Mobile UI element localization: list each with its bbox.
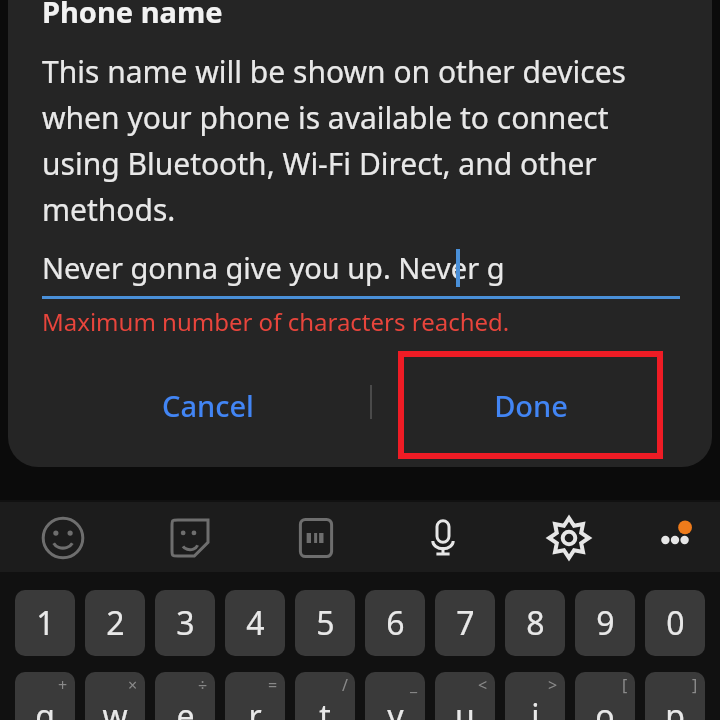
button[interactable]: Keyboard settings <box>539 508 599 568</box>
button[interactable]: 6 <box>365 590 425 656</box>
staticText: 4 <box>246 601 265 645</box>
button[interactable]: 7 <box>435 590 495 656</box>
staticText: × <box>128 674 138 696</box>
staticText: _ <box>410 674 418 696</box>
button[interactable]: More options <box>645 508 705 568</box>
button[interactable]: ] <box>645 672 705 720</box>
staticText: t <box>319 694 331 720</box>
staticText: < <box>478 674 488 696</box>
button[interactable]: < <box>435 672 495 720</box>
button[interactable]: [ <box>575 672 635 720</box>
button[interactable]: 1 <box>15 590 75 656</box>
button[interactable]: 4 <box>225 590 285 656</box>
staticText: Maximum number of characters reached. <box>42 305 510 338</box>
button[interactable]: 8 <box>505 590 565 656</box>
staticText: 1 <box>36 601 55 645</box>
button[interactable]: Done <box>404 357 657 453</box>
button[interactable]: + <box>15 672 75 720</box>
staticText: r <box>248 694 262 720</box>
button[interactable]: Stickers <box>160 508 220 568</box>
button[interactable]: = <box>225 672 285 720</box>
staticText: 0 <box>666 601 685 645</box>
staticText: > <box>548 674 558 696</box>
button[interactable]: / <box>295 672 355 720</box>
button[interactable]: 0 <box>645 590 705 656</box>
button[interactable]: × <box>85 672 145 720</box>
staticText: 3 <box>176 601 195 645</box>
staticText: ÷ <box>198 674 208 696</box>
button[interactable]: ÷ <box>155 672 215 720</box>
staticText: w <box>102 694 128 720</box>
staticText: 2 <box>106 601 125 645</box>
staticText: + <box>58 674 68 696</box>
staticText: y <box>387 694 404 720</box>
staticText: Cancel <box>162 386 254 425</box>
button[interactable]: _ <box>365 672 425 720</box>
staticText: o <box>595 694 615 720</box>
staticText: 9 <box>596 601 615 645</box>
staticText: Phone name <box>42 0 223 31</box>
staticText: This name will be shown on other devices… <box>42 51 674 230</box>
button[interactable]: 5 <box>295 590 355 656</box>
staticText: = <box>268 674 278 696</box>
button[interactable]: 2 <box>85 590 145 656</box>
staticText: Never gonna give you up. Never g <box>42 248 505 287</box>
staticText: 8 <box>526 601 545 645</box>
staticText: ] <box>692 674 698 696</box>
button[interactable]: Voice input <box>413 508 473 568</box>
staticText: 5 <box>316 601 335 645</box>
button[interactable]: Emoji <box>33 508 93 568</box>
staticText: q <box>35 694 55 720</box>
button[interactable]: GIF <box>286 508 346 568</box>
staticText: i <box>531 694 540 720</box>
button[interactable]: 9 <box>575 590 635 656</box>
staticText: p <box>665 694 685 720</box>
staticText: e <box>176 694 195 720</box>
staticText: Done <box>494 386 568 425</box>
staticText: 7 <box>456 601 475 645</box>
button[interactable]: 3 <box>155 590 215 656</box>
button[interactable]: > <box>505 672 565 720</box>
staticText: 6 <box>386 601 405 645</box>
button[interactable]: Cancel <box>110 366 305 444</box>
staticText: [ <box>622 674 628 696</box>
staticText: / <box>342 674 348 696</box>
staticText: u <box>455 694 475 720</box>
